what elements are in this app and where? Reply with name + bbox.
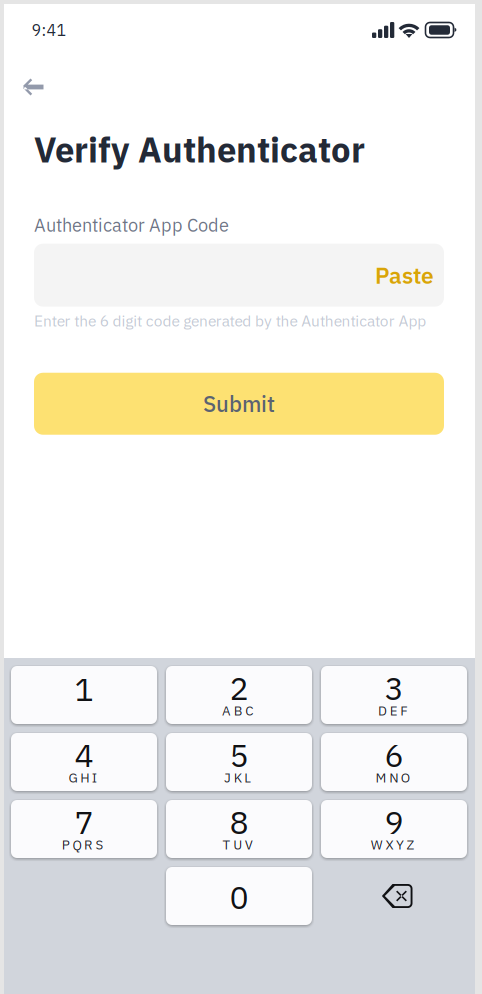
button[interactable]: 3 [321, 666, 467, 724]
staticText: 9 [384, 801, 403, 843]
button[interactable]: 6 [321, 733, 467, 791]
staticText: WXYZ [371, 836, 415, 853]
button[interactable]: Delete [321, 867, 467, 925]
staticText: Paste [375, 260, 434, 290]
button[interactable]: 8 [166, 800, 312, 858]
staticText: 0 [229, 876, 248, 918]
staticText: Enter the 6 digit code generated by the … [34, 311, 426, 331]
button[interactable]: Paste [375, 244, 444, 307]
button[interactable]: 2 [166, 666, 312, 724]
button[interactable]: 4 [11, 733, 157, 791]
staticText: Verify Authenticator [34, 127, 365, 172]
staticText: TUV [223, 836, 253, 853]
button[interactable]: 9 [321, 800, 467, 858]
staticText: 7 [74, 801, 93, 843]
staticText: JKL [224, 769, 251, 786]
staticText: 6 [384, 734, 403, 776]
staticText: PQRS [62, 836, 104, 853]
button[interactable]: Back [13, 70, 53, 104]
staticText: 9:41 [31, 20, 66, 40]
staticText: DEF [378, 702, 407, 719]
staticText: ABC [222, 702, 253, 719]
staticText: Authenticator App Code [34, 213, 229, 237]
button[interactable]: 5 [166, 733, 312, 791]
staticText: 3 [384, 667, 403, 709]
staticText: 2 [229, 667, 248, 709]
button[interactable]: 7 [11, 800, 157, 858]
button[interactable]: 1 [11, 666, 157, 724]
staticText: 4 [74, 734, 93, 776]
staticText: 5 [229, 734, 248, 776]
staticText: MNO [376, 769, 410, 786]
button[interactable]: 0 [166, 867, 312, 925]
button[interactable]: Submit [34, 373, 444, 435]
staticText: 8 [229, 801, 248, 843]
staticText: GHI [69, 769, 97, 786]
staticText: 1 [74, 668, 93, 710]
staticText: Submit [203, 389, 275, 418]
